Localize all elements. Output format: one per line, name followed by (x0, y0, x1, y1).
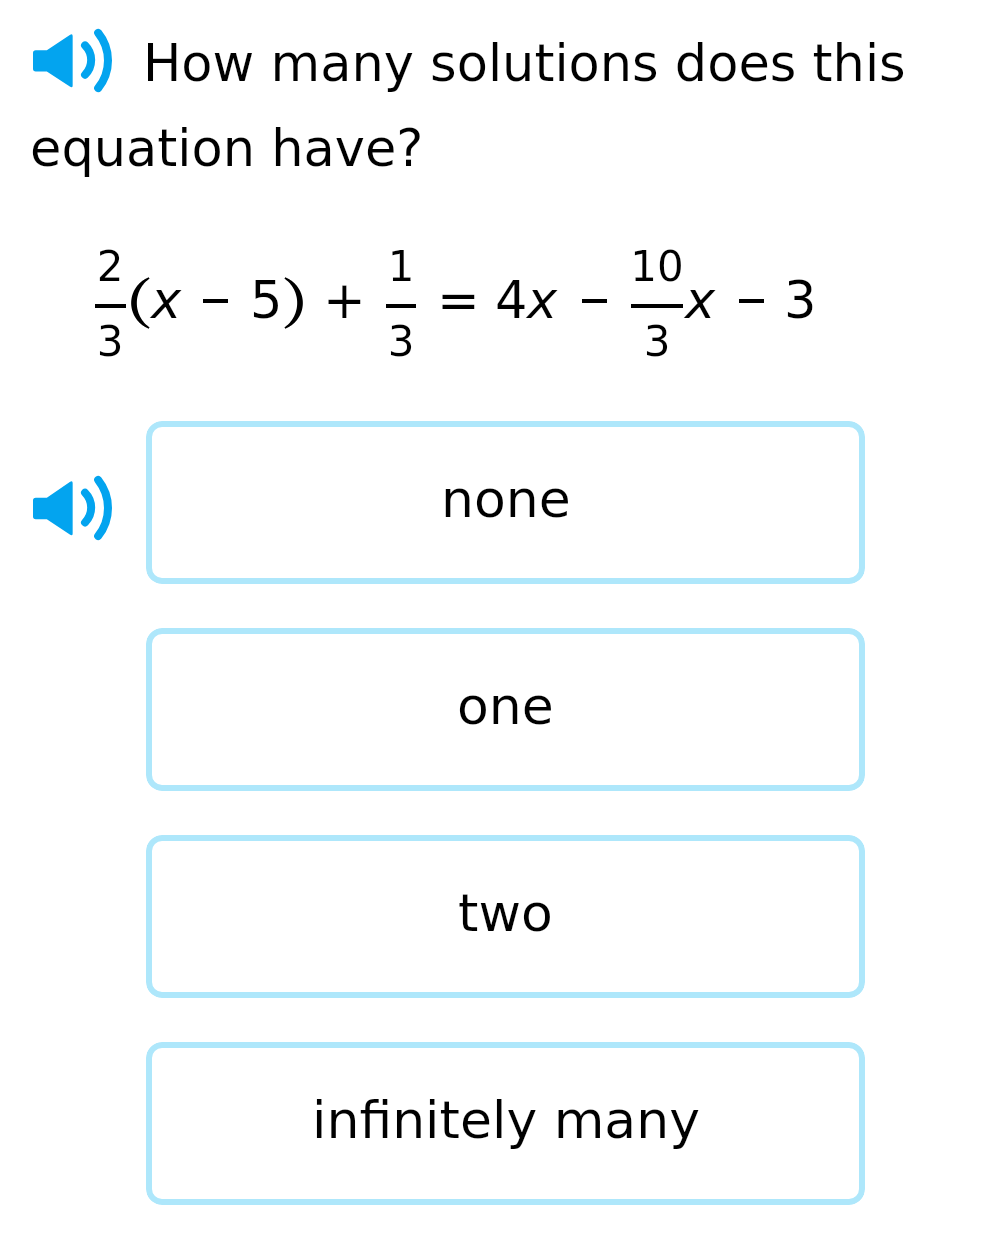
staticText: = (437, 271, 480, 330)
staticText: one (457, 676, 554, 737)
staticText: How many solutions does this (143, 34, 906, 93)
staticText: 3 (587, 317, 727, 366)
staticText: 4 (495, 271, 528, 330)
button[interactable]: Play question audio (33, 29, 112, 92)
button[interactable]: Play answers audio (33, 476, 112, 540)
staticText: none (441, 469, 571, 530)
staticText: + (323, 271, 366, 330)
staticText: x (527, 271, 558, 330)
staticText: two (458, 883, 553, 944)
button[interactable]: one (146, 628, 865, 791)
staticText: 10 (587, 242, 727, 291)
staticText: x (151, 271, 182, 330)
staticText: 1 (331, 242, 471, 291)
staticText: infinitely many (312, 1090, 700, 1151)
staticText: 2 (40, 242, 180, 291)
staticText: 3 (40, 317, 180, 366)
button[interactable]: two (146, 835, 865, 998)
button[interactable]: none (146, 421, 865, 584)
staticText: 3 (331, 317, 471, 366)
staticText: x (685, 271, 716, 330)
button[interactable]: infinitely many (146, 1042, 865, 1205)
staticText: equation have? (30, 119, 424, 178)
staticText: 5 (250, 271, 283, 330)
staticText: 3 (784, 271, 817, 330)
